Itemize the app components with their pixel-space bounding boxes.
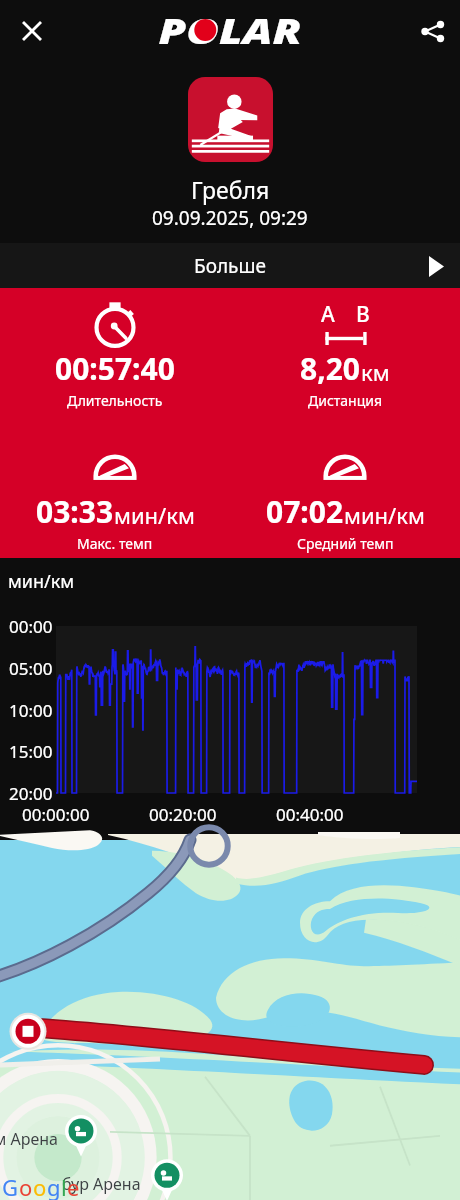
staticText: м Арена — [0, 1128, 58, 1150]
staticText: Больше — [194, 253, 266, 279]
staticText: Длительность — [67, 391, 163, 410]
staticText: Средний темп — [297, 534, 394, 553]
staticText: 00:20:00 — [149, 803, 217, 826]
staticText: 00:00:00 — [22, 803, 90, 826]
staticText: POLAR — [158, 6, 302, 54]
button[interactable]: 07:02 — [230, 443, 460, 553]
button[interactable]: Route map — [0, 840, 460, 1200]
button[interactable]: 03:33 — [0, 443, 230, 553]
staticText: 05:00 — [9, 657, 53, 680]
staticText: бур Арена — [62, 1173, 141, 1195]
button[interactable]: Share — [408, 7, 456, 55]
staticText: 00:40:00 — [276, 803, 344, 826]
staticText: g — [47, 1172, 61, 1200]
staticText: 20:00 — [9, 782, 53, 805]
staticText: 09.09.2025, 09:29 — [152, 205, 308, 231]
staticText: 8,20 — [300, 348, 361, 389]
staticText: км — [361, 357, 390, 387]
staticText: o — [33, 1172, 47, 1200]
staticText: o — [19, 1172, 33, 1200]
staticText: мин/км — [8, 569, 75, 594]
button[interactable]: Close — [8, 7, 56, 55]
staticText: A — [321, 300, 335, 329]
staticText: 07:02 — [266, 491, 344, 532]
staticText: 03:33 — [36, 491, 114, 532]
staticText: e — [67, 1172, 80, 1200]
staticText: 00:00 — [9, 615, 53, 638]
staticText: 10:00 — [9, 699, 53, 722]
staticText: мин/км — [344, 500, 425, 530]
staticText: G — [2, 1172, 19, 1200]
button[interactable]: Больше — [0, 243, 460, 288]
staticText: мин/км — [114, 500, 195, 530]
button[interactable]: A — [230, 300, 460, 410]
staticText: Дистанция — [308, 391, 383, 410]
staticText: l — [61, 1172, 67, 1200]
staticText: Макс. темп — [77, 534, 153, 553]
staticText: Гребля — [191, 174, 270, 205]
staticText: 00:57:40 — [55, 348, 175, 389]
button[interactable]: 00:57:40 — [0, 300, 230, 410]
staticText: 15:00 — [9, 740, 53, 763]
staticText: B — [356, 300, 370, 329]
